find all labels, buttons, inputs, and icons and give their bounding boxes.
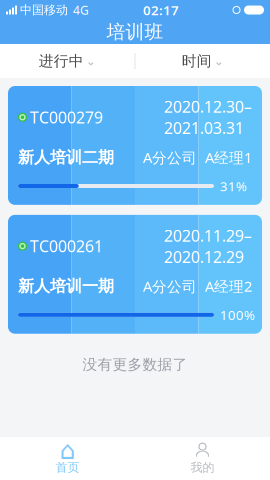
staticText: 新人培训二期 xyxy=(18,147,114,167)
button[interactable]: 培训班 xyxy=(0,20,270,44)
staticText: 2020.11.29–2020.12.29 xyxy=(164,225,252,267)
staticText: ⌂ xyxy=(59,436,75,465)
staticText: TC000261 xyxy=(30,235,103,257)
staticText: 100% xyxy=(220,306,255,324)
staticText: 培训班 xyxy=(106,20,163,43)
button[interactable]: TC000261 xyxy=(8,215,262,334)
staticText: 02:17 xyxy=(143,1,179,19)
staticText: 新人培训一期 xyxy=(18,276,114,296)
staticText: 进行中 xyxy=(39,52,84,70)
button[interactable]: 我的 xyxy=(135,436,270,480)
staticText: 时间 xyxy=(182,52,212,70)
staticText: A分公司 A经理1 xyxy=(143,147,252,167)
staticText: 没有更多数据了 xyxy=(82,356,187,374)
staticText: ⌄ xyxy=(86,54,96,68)
staticText: 2020.12.30–2021.03.31 xyxy=(164,96,252,138)
staticText: 4G xyxy=(73,2,89,18)
button[interactable]: 时间 xyxy=(135,44,270,78)
staticText: A分公司 A经理2 xyxy=(143,276,252,296)
staticText: 我的 xyxy=(190,460,214,475)
staticText: 中国移动 xyxy=(20,3,68,17)
staticText: TC000279 xyxy=(30,107,103,128)
staticText: ⌄ xyxy=(214,54,224,68)
staticText: 首页 xyxy=(55,460,79,475)
button[interactable]: 进行中 xyxy=(0,44,134,78)
staticText: 31% xyxy=(220,177,247,195)
button[interactable]: TC000279 xyxy=(8,86,262,205)
button[interactable]: ⌂ xyxy=(0,436,135,480)
